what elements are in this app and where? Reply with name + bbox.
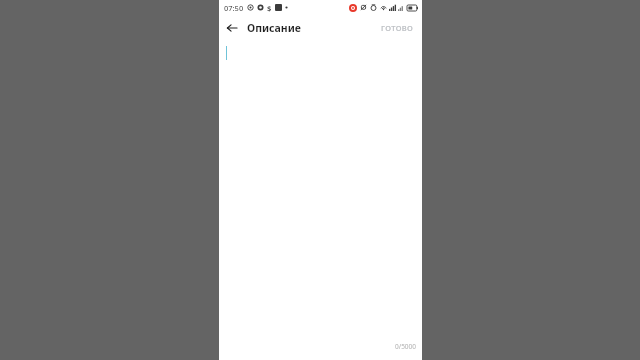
button[interactable]: Назад: [219, 15, 245, 41]
staticText: ГОТОВО: [381, 23, 414, 33]
button[interactable]: ГОТОВО: [373, 18, 422, 38]
staticText: 07:50: [224, 3, 244, 13]
staticText: 0/5000: [394, 342, 416, 351]
staticText: $: [267, 3, 272, 13]
staticText: Описание: [247, 21, 301, 35]
